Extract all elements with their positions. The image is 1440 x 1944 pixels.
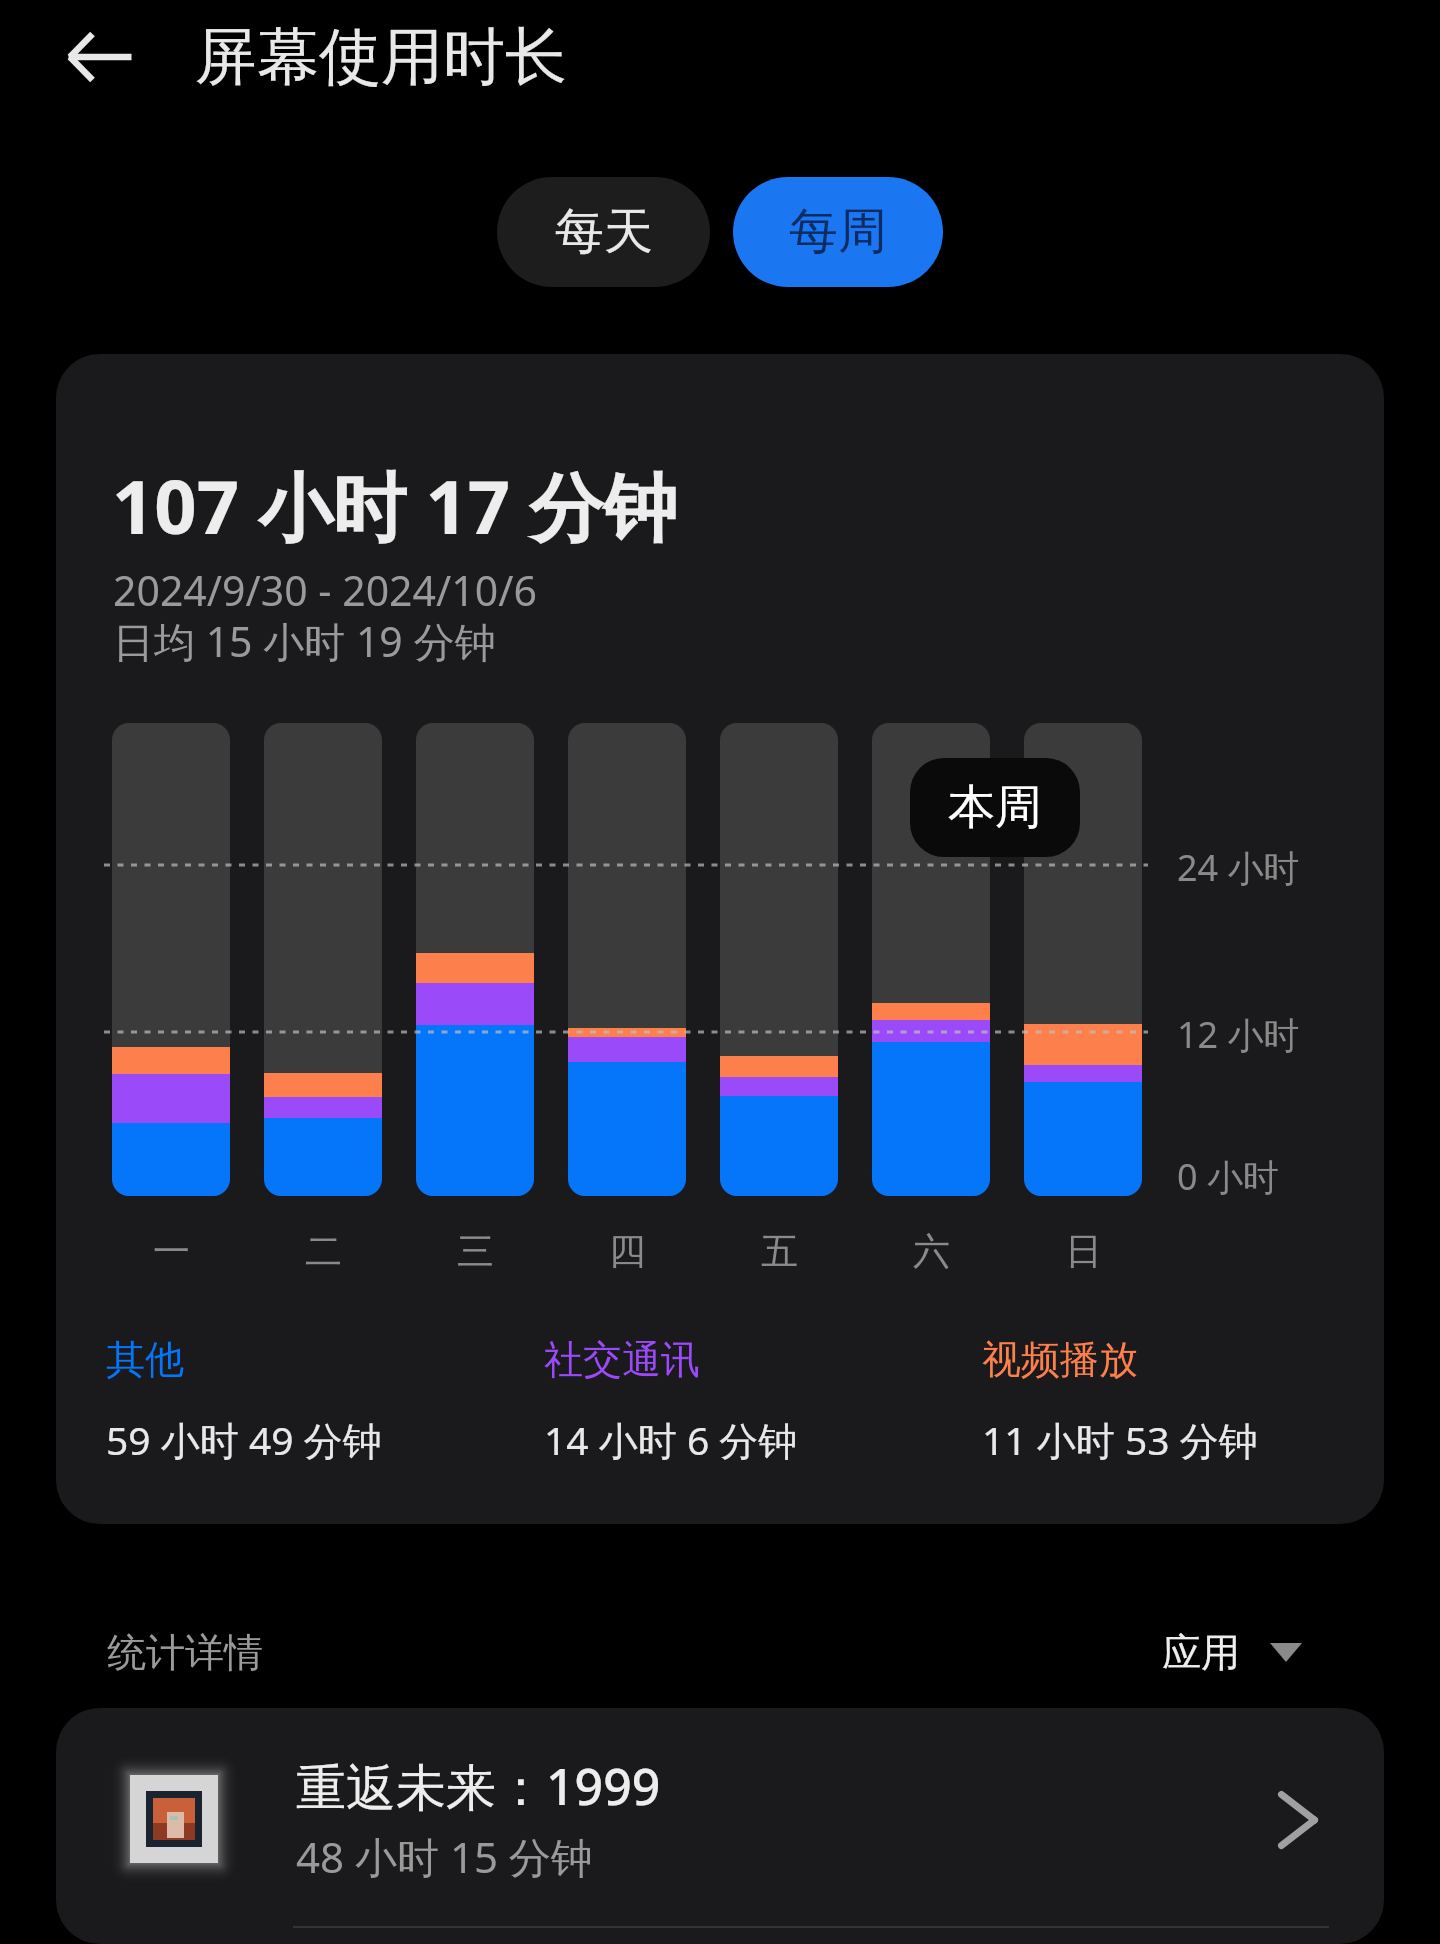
staticText: 其他 [106,1335,184,1384]
button[interactable]: Back [48,5,152,109]
staticText: 三 [457,1228,494,1275]
staticText: 日 [1065,1228,1102,1275]
staticText: 日均 15 小时 19 分钟 [113,613,496,669]
staticText: 11 小时 53 分钟 [982,1413,1258,1466]
staticText: 24 小时 [1177,843,1300,892]
staticText: 视频播放 [982,1335,1138,1384]
button[interactable]: 每周 [733,177,943,287]
staticText: 应用 [1162,1628,1240,1677]
staticText: 0 小时 [1177,1152,1279,1201]
staticText: 屏幕使用时长 [195,18,567,96]
button[interactable] [56,1708,1384,1926]
staticText: 六 [913,1228,950,1275]
staticText: 本周 [948,778,1042,837]
button[interactable]: 每天 [497,177,710,287]
staticText: 107 小时 17 分钟 [112,455,678,556]
staticText: 统计详情 [107,1628,263,1677]
other: Open app details [1278,1791,1318,1849]
button[interactable]: 应用 [1162,1628,1302,1677]
staticText: 14 小时 6 分钟 [544,1413,798,1466]
staticText: 四 [609,1228,646,1275]
staticText: 重返未来：1999 [296,1752,661,1820]
staticText: 五 [761,1228,798,1275]
staticText: 二 [305,1228,342,1275]
staticText: 每周 [789,201,887,263]
staticText: 一 [153,1228,190,1275]
staticText: 48 小时 15 分钟 [296,1828,593,1885]
staticText: 2024/9/30 - 2024/10/6 [113,562,537,618]
staticText: 社交通讯 [544,1335,700,1384]
staticText: 每天 [555,201,653,263]
staticText: 59 小时 49 分钟 [106,1413,382,1466]
staticText: 12 小时 [1177,1010,1300,1059]
